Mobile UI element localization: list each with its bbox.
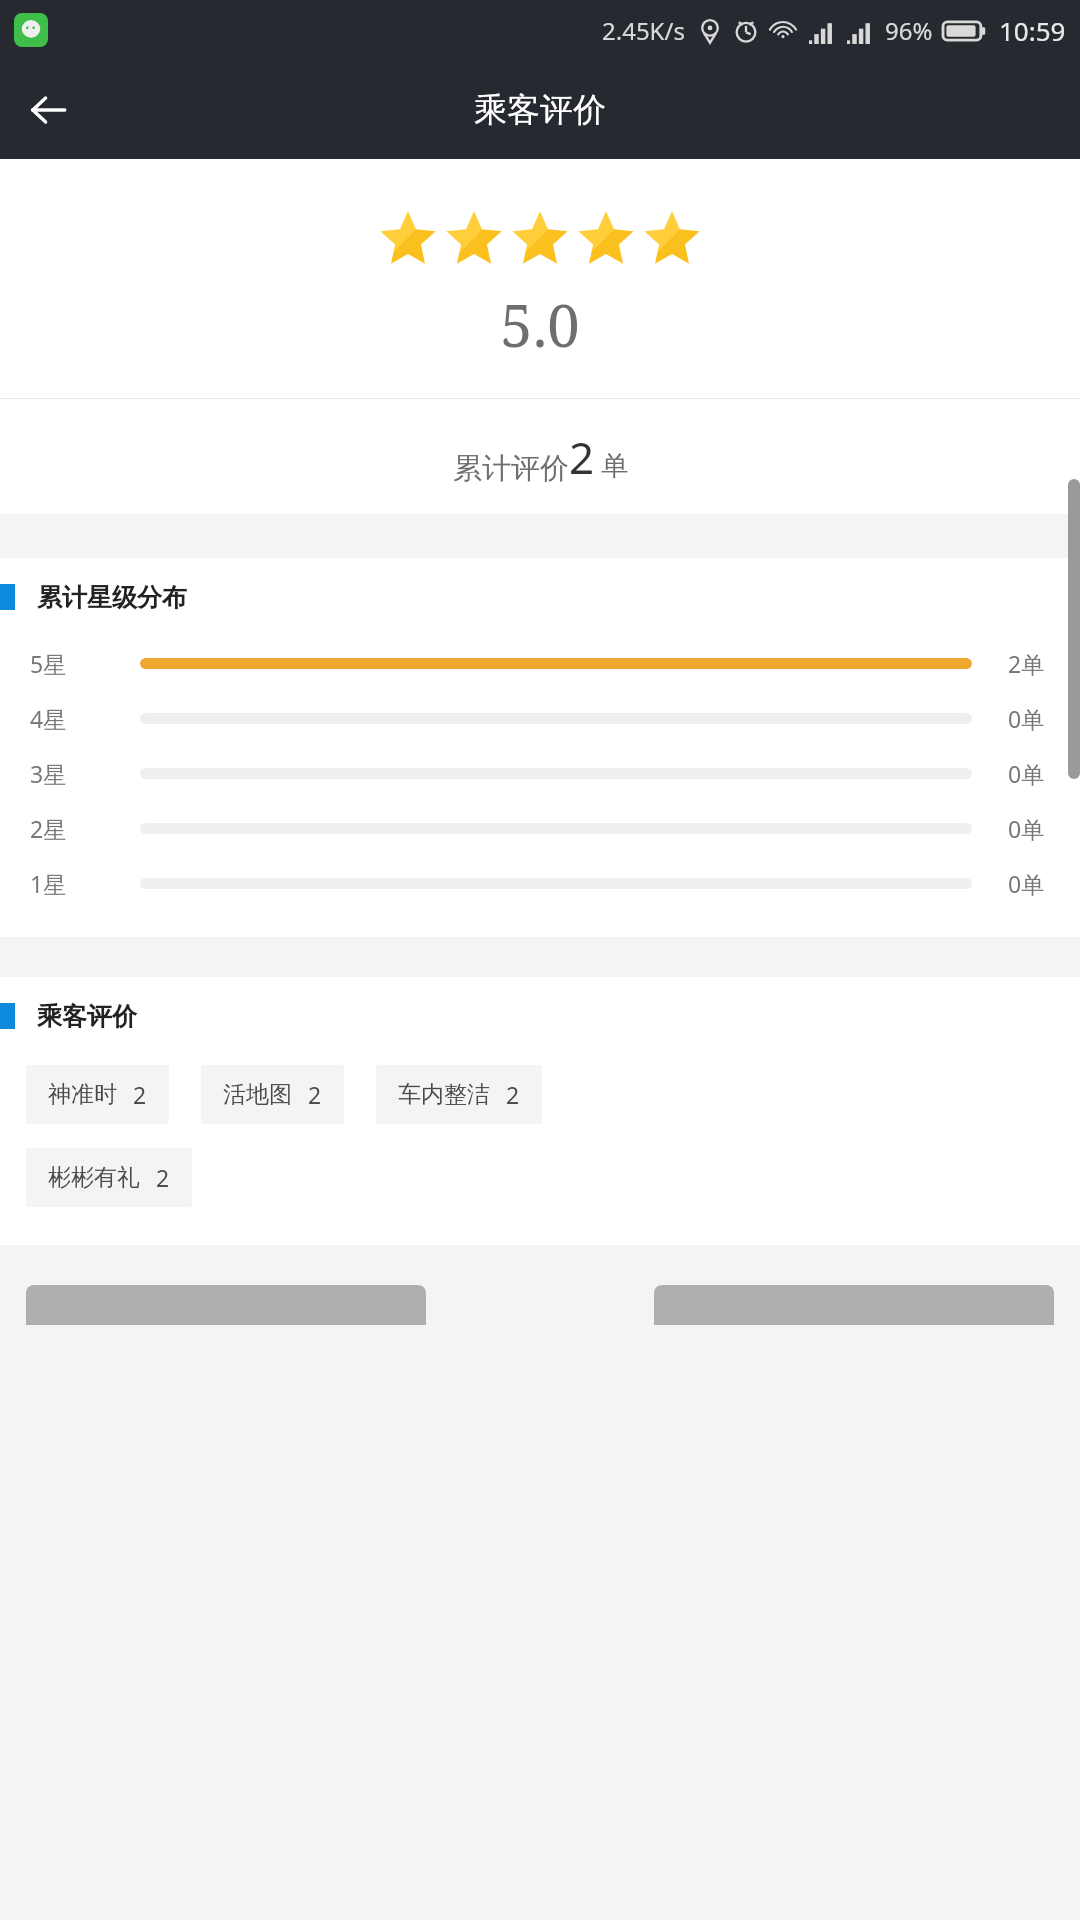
staticText: 活地图 (223, 1080, 292, 1109)
staticText: 0单 (1008, 868, 1045, 899)
staticText: 乘客评价 (474, 89, 606, 131)
staticText: 2.45K/s (602, 14, 685, 47)
staticText: 2 (569, 427, 595, 487)
staticText: 2 (156, 1162, 170, 1193)
staticText: 96% (885, 14, 933, 47)
staticText: 累计星级分布 (37, 582, 187, 613)
staticText: 5.0 (0, 285, 1080, 364)
staticText: 2 (506, 1079, 520, 1110)
button[interactable]: 车内整洁 (376, 1065, 542, 1124)
staticText: 2单 (1008, 648, 1045, 679)
staticText: 5星 (30, 648, 140, 679)
staticText: 乘客评价 (37, 1001, 137, 1032)
staticText: 神准时 (48, 1080, 117, 1109)
staticText: 2 (308, 1079, 322, 1110)
staticText: 1星 (30, 868, 140, 899)
staticText: 车内整洁 (398, 1080, 490, 1109)
button[interactable]: Back (0, 62, 96, 158)
button[interactable]: 活地图 (201, 1065, 344, 1124)
staticText: 0单 (1008, 703, 1045, 734)
staticText: 彬彬有礼 (48, 1163, 140, 1192)
staticText: 0单 (1008, 758, 1045, 789)
staticText: 单 (601, 449, 628, 483)
staticText: 0单 (1008, 813, 1045, 844)
staticText: 2星 (30, 813, 140, 844)
staticText: 2 (133, 1079, 147, 1110)
button[interactable]: 彬彬有礼 (26, 1148, 192, 1207)
staticText: 3星 (30, 758, 140, 789)
button[interactable]: 神准时 (26, 1065, 169, 1124)
staticText: 10:59 (999, 13, 1066, 48)
staticText: 4星 (30, 703, 140, 734)
staticText: 累计评价 (453, 450, 569, 487)
